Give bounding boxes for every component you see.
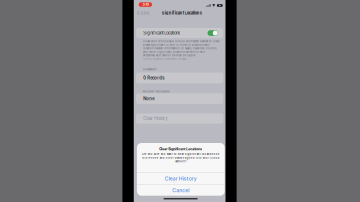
staticText: 3:41 bbox=[142, 2, 148, 6]
staticText: encrypted and cannot be read by Apple. bbox=[143, 54, 196, 57]
button[interactable]: Significant Locations bbox=[143, 28, 218, 38]
staticText: Allow your iPhone and iCloud connected d… bbox=[143, 40, 220, 43]
staticText: None bbox=[143, 96, 154, 101]
staticText: Significant Locations bbox=[143, 30, 180, 35]
button[interactable]: Clear History bbox=[143, 113, 223, 124]
staticText: SUMMARY bbox=[143, 68, 157, 71]
staticText: and more. Significant Locations are end-… bbox=[143, 50, 205, 53]
staticText: RECENT RECORDS bbox=[143, 90, 170, 93]
staticText: Clear Significant Locations bbox=[159, 147, 202, 151]
staticText: Clear History bbox=[165, 176, 197, 182]
staticText: Are you sure you want to clear Significa… bbox=[142, 152, 220, 156]
staticText: About Location Services & Privacy... bbox=[143, 57, 189, 60]
staticText: 0 Records bbox=[143, 75, 164, 80]
button[interactable]: Back bbox=[137, 10, 149, 16]
staticText: places significant to you in order to pr… bbox=[143, 43, 210, 46]
staticText: account? bbox=[175, 160, 186, 163]
staticText: Back bbox=[140, 11, 149, 15]
staticText: location-related information in Maps, Ca… bbox=[143, 47, 217, 50]
button[interactable]: Clear History bbox=[137, 173, 225, 185]
staticText: Significant Locations bbox=[162, 10, 202, 15]
staticText: Clear History bbox=[143, 116, 167, 121]
staticText: this iPhone and other devices signed int… bbox=[142, 156, 220, 159]
button[interactable]: About Location Services & Privacy... bbox=[143, 57, 189, 60]
button[interactable]: 0 Records bbox=[143, 72, 223, 83]
button[interactable]: None bbox=[143, 93, 223, 104]
staticText: Cancel bbox=[172, 187, 189, 193]
button[interactable]: Cancel bbox=[137, 185, 225, 196]
